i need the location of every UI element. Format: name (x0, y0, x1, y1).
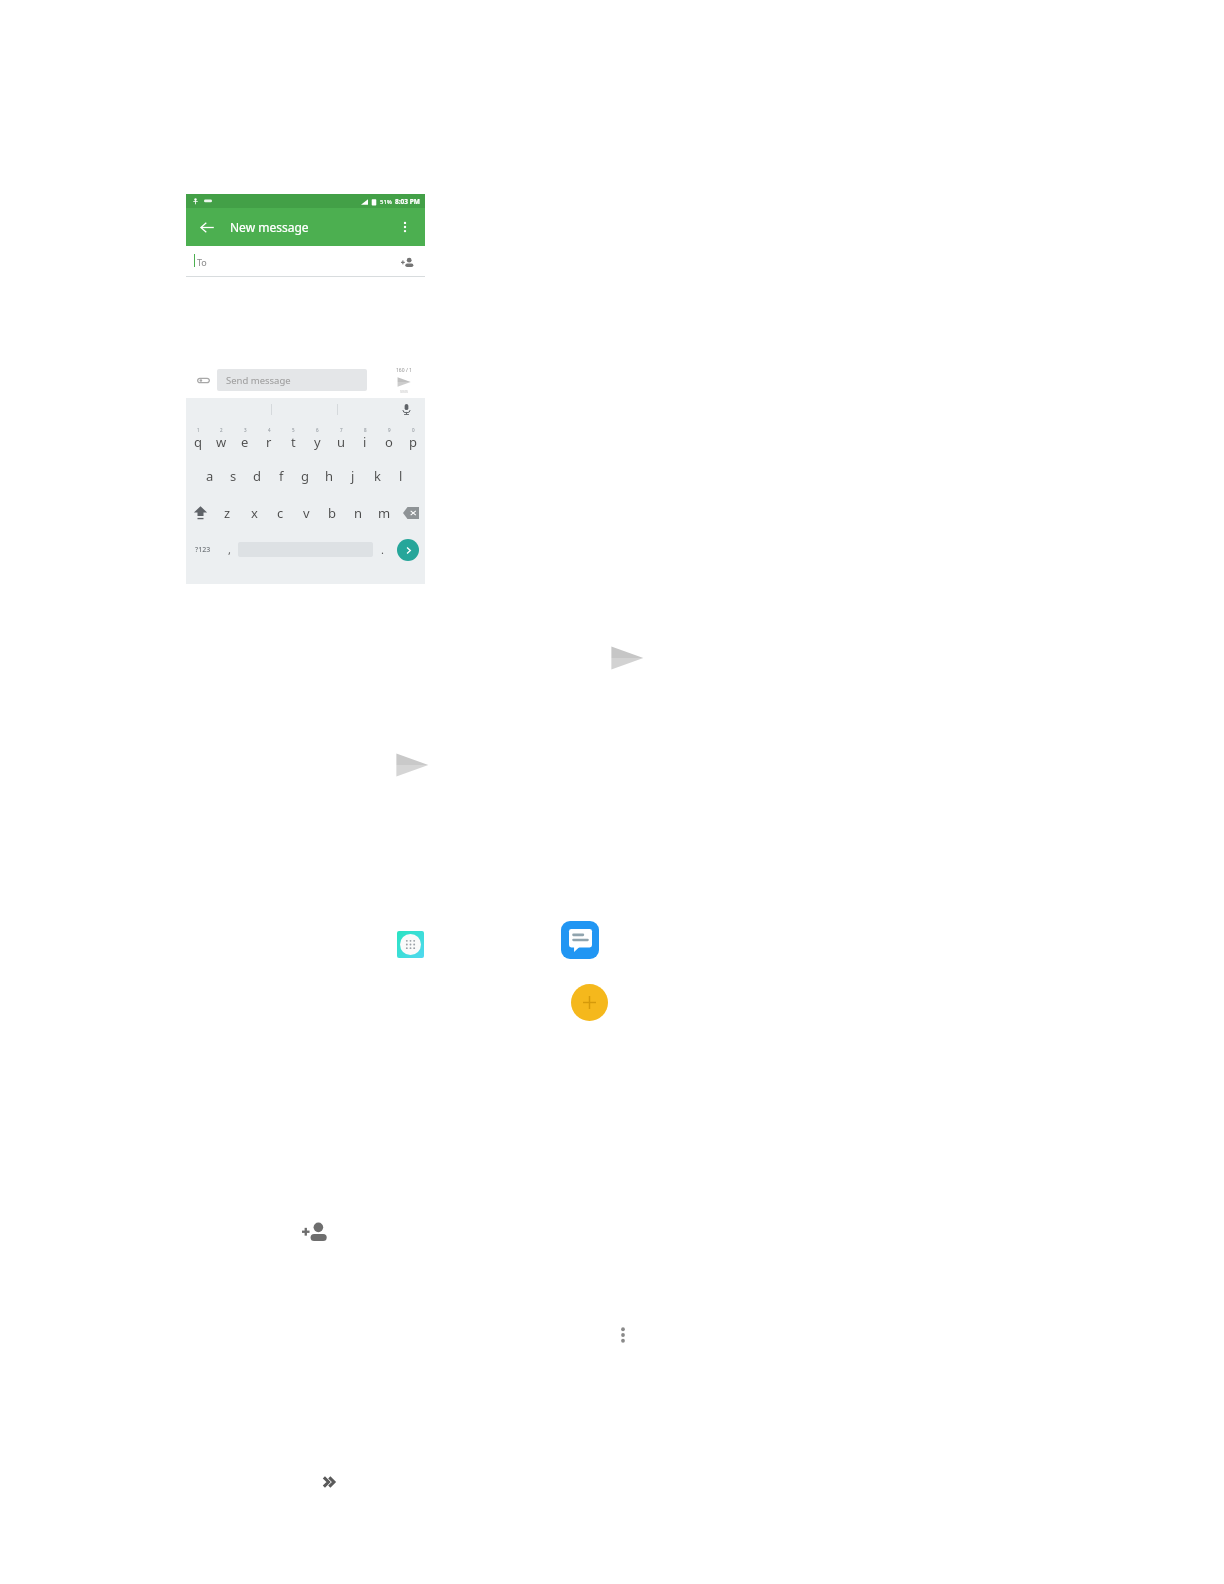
staticText: 9 (388, 427, 391, 433)
button[interactable]: z (214, 494, 241, 531)
button[interactable]: n (345, 494, 371, 531)
staticText: c (277, 504, 284, 522)
staticText: b (328, 504, 336, 522)
staticText: 0 (412, 427, 415, 433)
staticText: SMS (400, 389, 409, 394)
button[interactable]: b (319, 494, 345, 531)
button[interactable]: 6 (305, 420, 329, 457)
staticText: n (354, 504, 363, 522)
staticText: , (228, 542, 231, 557)
staticText: z (224, 504, 231, 522)
button[interactable]: Shift (186, 494, 214, 531)
button[interactable]: 7 (329, 420, 353, 457)
button[interactable]: 9 (377, 420, 401, 457)
staticText: 160 / 1 (396, 367, 412, 374)
button[interactable]: 0 (401, 420, 425, 457)
button[interactable]: f (269, 457, 293, 494)
button[interactable]: Voice input (397, 400, 415, 418)
staticText: 8 (364, 427, 367, 433)
button[interactable]: 3 (233, 420, 257, 457)
button[interactable]: 1 (186, 420, 209, 457)
button[interactable]: s (221, 457, 245, 494)
button[interactable]: l (389, 457, 413, 494)
staticText: 6 (316, 427, 319, 433)
button[interactable]: Send message (392, 745, 432, 785)
button[interactable]: More options (394, 216, 416, 238)
button[interactable]: , (220, 531, 238, 568)
staticText: k (374, 467, 381, 485)
staticText: p (409, 433, 417, 451)
button[interactable]: j (341, 457, 365, 494)
staticText: e (241, 433, 249, 451)
staticText: u (337, 433, 346, 451)
button[interactable]: m (371, 494, 397, 531)
button[interactable]: Send message (217, 369, 367, 391)
staticText: o (385, 433, 393, 451)
staticText: a (206, 467, 214, 485)
button[interactable]: Enter (391, 531, 425, 568)
button[interactable]: g (293, 457, 317, 494)
staticText: s (230, 467, 237, 485)
staticText: 8:03 PM (395, 197, 420, 206)
staticText: . (381, 542, 384, 557)
staticText: 4 (268, 427, 271, 433)
button[interactable]: 5 (281, 420, 305, 457)
staticText: y (314, 433, 321, 451)
button[interactable]: Backspace (397, 494, 425, 531)
button[interactable]: x (241, 494, 267, 531)
staticText: 1 (197, 427, 200, 433)
staticText: Send message (226, 374, 291, 387)
staticText: l (399, 467, 403, 485)
staticText: r (266, 433, 272, 451)
staticText: ?123 (195, 545, 211, 555)
staticText: j (351, 467, 355, 485)
button[interactable]: 8 (353, 420, 377, 457)
staticText: h (325, 467, 334, 485)
staticText: 2 (220, 427, 223, 433)
button[interactable]: More options (608, 1320, 638, 1350)
button[interactable]: Send (607, 638, 647, 678)
staticText: g (301, 467, 309, 485)
button[interactable]: Add contact (397, 252, 417, 272)
staticText: w (216, 433, 227, 451)
button[interactable]: Attach (192, 369, 214, 391)
button[interactable]: v (293, 494, 319, 531)
staticText: f (279, 467, 284, 485)
button[interactable]: Messages (561, 921, 599, 959)
staticText: x (251, 504, 258, 522)
button[interactable]: Send (389, 367, 419, 394)
button[interactable]: d (245, 457, 269, 494)
staticText: d (253, 467, 261, 485)
button[interactable]: 4 (257, 420, 281, 457)
button[interactable]: c (267, 494, 293, 531)
staticText: 7 (340, 427, 343, 433)
staticText: v (303, 504, 310, 522)
button[interactable]: Back (196, 216, 218, 238)
button[interactable]: To (186, 246, 425, 277)
button[interactable]: Add contact (299, 1216, 331, 1248)
staticText: i (363, 433, 367, 451)
button[interactable]: 2 (209, 420, 233, 457)
staticText: 3 (244, 427, 247, 433)
staticText: m (378, 504, 391, 522)
button[interactable]: Expand (316, 1468, 344, 1496)
staticText: 5 (292, 427, 295, 433)
staticText: 51% (380, 198, 392, 206)
button[interactable]: k (365, 457, 389, 494)
button[interactable]: New conversation (571, 984, 608, 1021)
button[interactable]: h (317, 457, 341, 494)
button[interactable]: a (198, 457, 221, 494)
staticText: To (197, 256, 207, 268)
staticText: q (194, 433, 202, 451)
staticText: t (291, 433, 296, 451)
staticText: New message (230, 219, 309, 235)
button[interactable]: ?123 (186, 531, 220, 568)
button[interactable]: Apps (397, 931, 424, 958)
button[interactable]: . (373, 531, 391, 568)
